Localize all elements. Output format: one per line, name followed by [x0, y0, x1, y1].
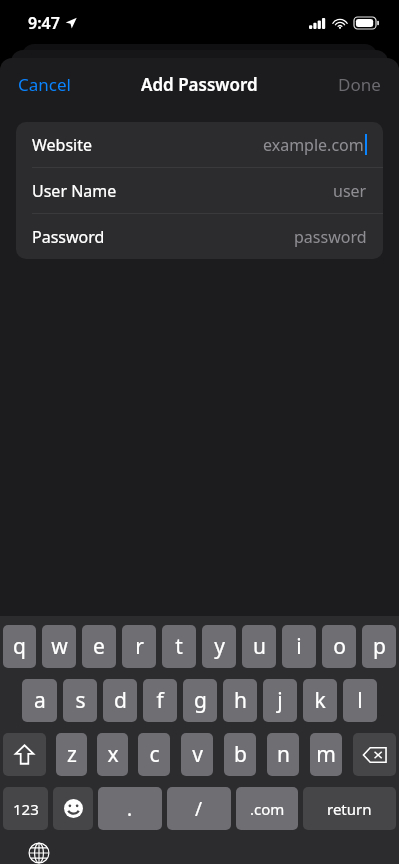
button[interactable]: a	[22, 679, 57, 722]
button[interactable]: e	[82, 625, 116, 668]
button[interactable]: l	[343, 679, 377, 722]
staticText: password	[294, 226, 367, 248]
staticText: m	[316, 740, 336, 769]
staticText: Password	[32, 226, 105, 248]
staticText: g	[194, 686, 207, 715]
button[interactable]: r	[122, 625, 156, 668]
staticText: z	[67, 740, 77, 769]
button[interactable]: n	[267, 733, 299, 776]
button[interactable]: q	[3, 625, 36, 668]
staticText: User Name	[32, 180, 117, 202]
staticText: t	[175, 632, 183, 661]
staticText: .	[127, 796, 133, 822]
staticText: v	[192, 740, 203, 769]
staticText: Cancel	[18, 73, 71, 96]
button[interactable]: Cancel	[0, 63, 89, 106]
staticText: j	[277, 686, 283, 715]
button[interactable]: m	[310, 733, 342, 776]
staticText: .com	[250, 799, 285, 819]
button[interactable]: s	[63, 679, 97, 722]
button[interactable]: z	[56, 733, 87, 776]
staticText: /	[195, 796, 203, 822]
staticText: return	[327, 799, 372, 819]
staticText: e	[93, 632, 105, 661]
staticText: s	[75, 686, 86, 715]
button[interactable]: .	[98, 787, 162, 830]
button[interactable]: User Name	[16, 168, 383, 213]
staticText: b	[234, 740, 247, 769]
button[interactable]: Password	[16, 214, 383, 259]
button[interactable]: Shift	[3, 733, 46, 776]
staticText: a	[34, 686, 46, 715]
button[interactable]: w	[42, 625, 76, 668]
staticText: h	[234, 686, 247, 715]
button[interactable]: return	[303, 787, 396, 830]
staticText: p	[373, 632, 386, 661]
button[interactable]: v	[181, 733, 213, 776]
button[interactable]: Done	[320, 63, 399, 106]
button[interactable]: t	[162, 625, 196, 668]
staticText: q	[13, 632, 26, 661]
button[interactable]: Backspace	[353, 733, 396, 776]
staticText: user	[333, 180, 367, 202]
staticText: o	[333, 632, 346, 661]
staticText: l	[357, 686, 363, 715]
button[interactable]: Emoji	[53, 787, 93, 830]
staticText: c	[149, 740, 160, 769]
staticText: 123	[13, 799, 39, 819]
button[interactable]: j	[263, 679, 297, 722]
staticText: k	[314, 686, 326, 715]
staticText: i	[296, 632, 302, 661]
staticText: d	[114, 686, 127, 715]
staticText: Add Password	[141, 73, 258, 96]
staticText: example.com	[263, 134, 364, 156]
staticText: r	[135, 632, 144, 661]
button[interactable]: u	[242, 625, 276, 668]
staticText: n	[277, 740, 290, 769]
button[interactable]: d	[103, 679, 137, 722]
button[interactable]: x	[97, 733, 128, 776]
button[interactable]: h	[223, 679, 257, 722]
staticText: 9:47	[28, 12, 60, 34]
button[interactable]: .com	[236, 787, 298, 830]
staticText: Website	[32, 134, 93, 156]
staticText: x	[107, 740, 119, 769]
button[interactable]: p	[362, 625, 396, 668]
button[interactable]: y	[202, 625, 236, 668]
staticText: u	[253, 632, 266, 661]
button[interactable]: c	[138, 733, 170, 776]
button[interactable]: f	[143, 679, 177, 722]
button[interactable]: k	[303, 679, 337, 722]
staticText: w	[51, 632, 68, 661]
staticText: f	[156, 686, 164, 715]
staticText: Done	[338, 73, 381, 96]
button[interactable]: i	[282, 625, 316, 668]
button[interactable]: Website	[16, 122, 383, 167]
button[interactable]: /	[167, 787, 231, 830]
staticText: y	[214, 632, 225, 661]
button[interactable]: Change keyboard language	[22, 842, 56, 864]
button[interactable]: b	[224, 733, 256, 776]
button[interactable]: o	[322, 625, 356, 668]
button[interactable]: Numbers	[3, 787, 48, 830]
button[interactable]: g	[183, 679, 217, 722]
